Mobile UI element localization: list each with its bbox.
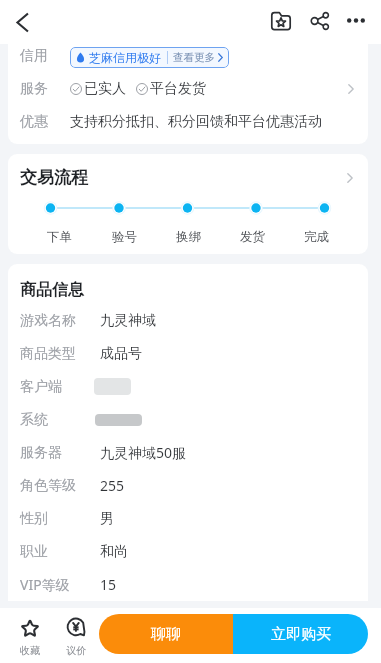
staticText: 下单 bbox=[47, 229, 72, 245]
staticText: 立即购买 bbox=[271, 625, 331, 644]
staticText: 优惠 bbox=[20, 113, 48, 131]
staticText: 芝麻信用极好 bbox=[89, 50, 161, 65]
staticText: 九灵神域50服 bbox=[100, 443, 187, 462]
staticText: 性别 bbox=[20, 510, 48, 528]
staticText: VIP等级 bbox=[20, 575, 70, 594]
staticText: 收藏 bbox=[20, 644, 40, 657]
staticText: 男 bbox=[100, 510, 114, 528]
button[interactable]: 收藏 bbox=[8, 610, 52, 663]
button[interactable]: 交易流程 bbox=[20, 167, 353, 188]
button[interactable]: 议价 bbox=[54, 610, 98, 663]
staticText: 角色等级 bbox=[20, 477, 76, 495]
staticText: 查看更多 bbox=[173, 51, 215, 64]
staticText: 已实人 bbox=[84, 80, 126, 98]
staticText: 客户端 bbox=[20, 378, 62, 396]
button[interactable]: 立即购买 bbox=[233, 614, 368, 654]
button[interactable]: Back bbox=[7, 8, 36, 37]
staticText: 交易流程 bbox=[20, 167, 88, 188]
button[interactable]: Collection bbox=[266, 6, 296, 36]
staticText: 完成 bbox=[304, 229, 329, 245]
staticText: 平台发货 bbox=[150, 80, 206, 98]
staticText: 支持积分抵扣、积分回馈和平台优惠活动 bbox=[70, 113, 322, 131]
staticText: 游戏名称 bbox=[20, 312, 76, 330]
button[interactable]: 芝麻信用极好 bbox=[76, 47, 223, 68]
staticText: 系统 bbox=[20, 411, 48, 429]
button[interactable]: More options bbox=[341, 5, 371, 35]
staticText: 验号 bbox=[112, 229, 137, 245]
staticText: 信用 bbox=[20, 47, 48, 65]
staticText: 议价 bbox=[66, 644, 86, 657]
staticText: 职业 bbox=[20, 543, 48, 561]
staticText: 服务 bbox=[20, 80, 48, 98]
staticText: 换绑 bbox=[176, 229, 201, 245]
staticText: 商品类型 bbox=[20, 345, 76, 363]
staticText: 服务器 bbox=[20, 444, 62, 462]
staticText: 商品信息 bbox=[20, 280, 84, 300]
staticText: 和尚 bbox=[100, 543, 128, 561]
staticText: 发货 bbox=[240, 229, 265, 245]
button[interactable]: Share bbox=[305, 6, 335, 36]
staticText: 255 bbox=[100, 476, 125, 495]
button[interactable]: 服务 bbox=[20, 72, 354, 105]
staticText: 九灵神域 bbox=[100, 312, 156, 330]
staticText: 成品号 bbox=[100, 345, 142, 363]
staticText: 聊聊 bbox=[151, 625, 181, 644]
button[interactable]: 聊聊 bbox=[99, 614, 233, 654]
staticText: 15 bbox=[100, 575, 117, 594]
